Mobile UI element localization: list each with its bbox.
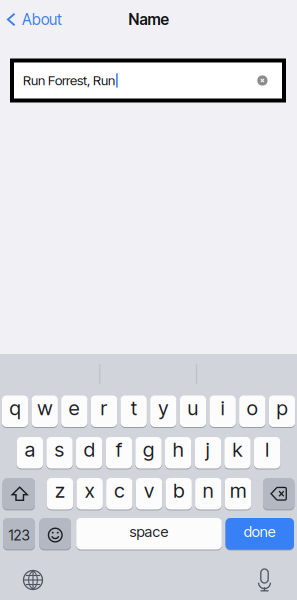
staticText: f: [116, 437, 122, 461]
staticText: b: [173, 478, 184, 502]
staticText: c: [114, 478, 124, 502]
button[interactable]: e: [61, 395, 88, 427]
staticText: m: [230, 478, 246, 502]
button[interactable]: done: [225, 518, 294, 549]
staticText: l: [265, 437, 269, 461]
staticText: z: [55, 478, 65, 502]
button[interactable]: o: [239, 395, 265, 427]
staticText: 123: [8, 527, 29, 544]
staticText: j: [206, 437, 210, 461]
staticText: w: [37, 396, 52, 420]
button[interactable]: Emoji: [39, 518, 71, 549]
staticText: a: [25, 437, 35, 461]
staticText: e: [69, 396, 80, 420]
button[interactable]: c: [106, 478, 132, 509]
staticText: y: [158, 396, 168, 420]
button[interactable]: Delete: [263, 478, 294, 509]
staticText: Run Forrest, Run: [23, 72, 115, 88]
button[interactable]: n: [195, 478, 221, 509]
staticText: done: [244, 523, 276, 540]
button[interactable]: About: [0, 3, 71, 36]
button[interactable]: j: [195, 437, 221, 468]
staticText: r: [100, 396, 107, 420]
button[interactable]: f: [106, 437, 132, 468]
button[interactable]: space: [76, 518, 222, 549]
button[interactable]: h: [165, 437, 191, 468]
staticText: p: [276, 396, 287, 420]
button[interactable]: p: [269, 395, 295, 427]
button[interactable]: y: [150, 395, 176, 427]
staticText: space: [129, 523, 168, 540]
staticText: q: [9, 396, 20, 420]
button[interactable]: i: [209, 395, 236, 427]
button[interactable]: q: [2, 395, 28, 427]
staticText: s: [54, 437, 64, 461]
staticText: o: [247, 396, 258, 420]
staticText: v: [144, 478, 154, 502]
button[interactable]: b: [165, 478, 192, 509]
button[interactable]: Dictation: [250, 561, 278, 598]
button[interactable]: u: [180, 395, 206, 427]
button[interactable]: s: [46, 437, 73, 468]
staticText: About: [22, 10, 62, 29]
staticText: n: [203, 478, 214, 502]
staticText: k: [232, 437, 242, 461]
button[interactable]: t: [120, 395, 147, 427]
button[interactable]: Shift: [3, 478, 35, 509]
staticText: d: [84, 437, 95, 461]
staticText: g: [143, 437, 154, 461]
staticText: Name: [128, 10, 168, 29]
staticText: i: [221, 396, 225, 420]
button[interactable]: v: [136, 478, 162, 509]
button[interactable]: m: [225, 478, 251, 509]
button[interactable]: a: [17, 437, 43, 468]
button[interactable]: w: [31, 395, 58, 427]
staticText: x: [85, 478, 95, 502]
button[interactable]: Next keyboard: [16, 563, 49, 596]
button[interactable]: g: [135, 437, 162, 468]
button[interactable]: d: [76, 437, 102, 468]
button[interactable]: z: [47, 478, 73, 509]
button[interactable]: l: [254, 437, 280, 468]
button[interactable]: k: [224, 437, 251, 468]
staticText: h: [173, 437, 184, 461]
staticText: t: [131, 396, 137, 420]
button[interactable]: r: [91, 395, 117, 427]
staticText: u: [187, 396, 198, 420]
button[interactable]: 123: [3, 518, 35, 549]
button[interactable]: x: [76, 478, 103, 509]
